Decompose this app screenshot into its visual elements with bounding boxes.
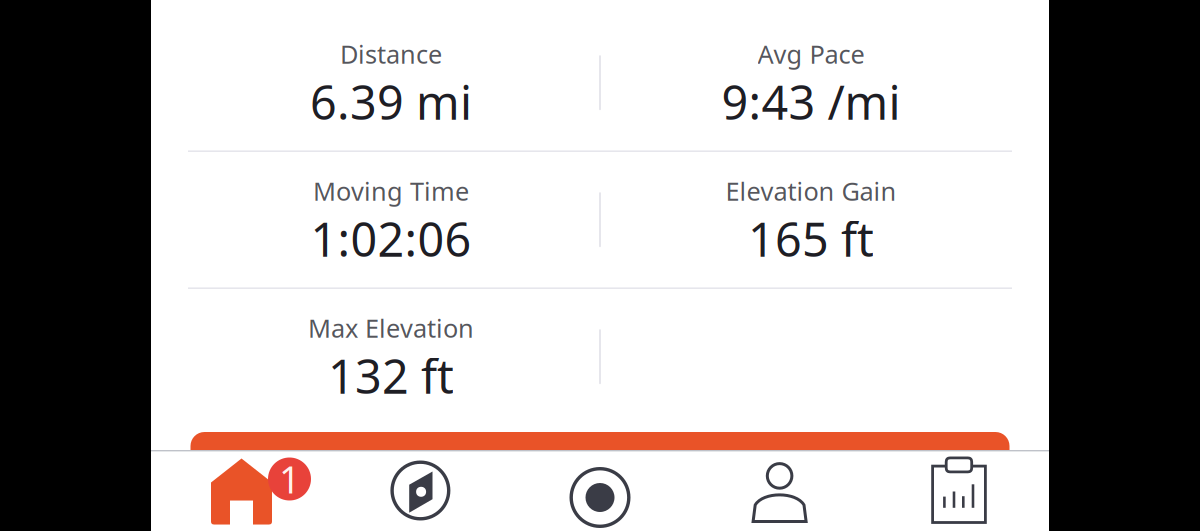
button[interactable]: Resume workout — [190, 432, 1009, 450]
staticText: Elevation Gain — [725, 174, 896, 208]
button[interactable]: Home — [151, 450, 331, 531]
staticText: Avg Pace — [757, 37, 864, 71]
button[interactable]: Profile — [690, 450, 869, 531]
staticText: 132 ft — [328, 345, 454, 407]
button[interactable]: Activity — [869, 450, 1049, 531]
staticText: 165 ft — [748, 208, 874, 270]
staticText: 1 — [279, 454, 300, 504]
button[interactable]: Explore — [331, 450, 510, 531]
staticText: 1:02:06 — [310, 208, 471, 270]
staticText: Moving Time — [313, 174, 469, 208]
staticText: 6.39 mi — [310, 71, 472, 133]
button[interactable]: Record — [510, 450, 690, 531]
staticText: Distance — [340, 37, 442, 71]
staticText: Max Elevation — [308, 311, 474, 345]
staticText: 9:43 /mi — [721, 71, 900, 133]
